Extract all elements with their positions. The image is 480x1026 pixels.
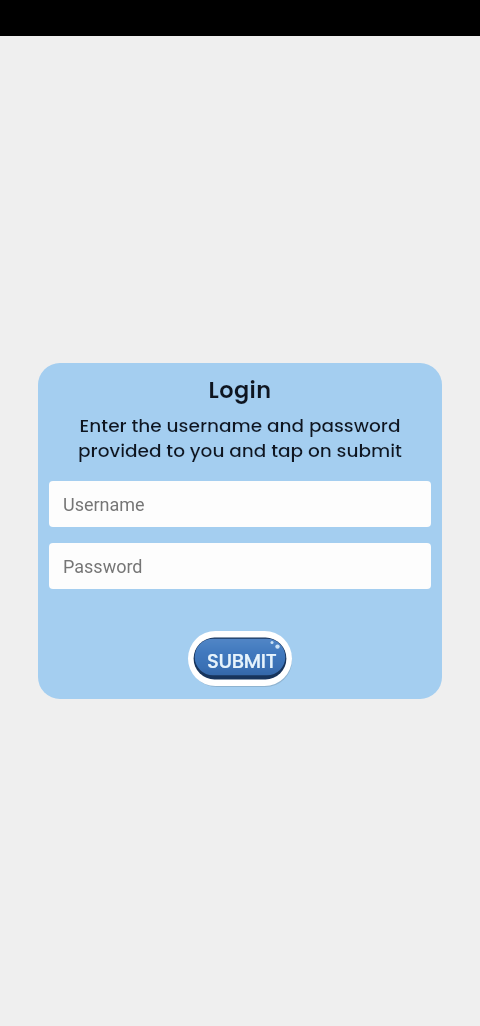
staticText: Enter the username and password provided… <box>38 413 442 463</box>
button[interactable]: Username <box>49 481 431 527</box>
staticText: Login <box>38 374 442 405</box>
button[interactable]: Password <box>49 543 431 589</box>
button[interactable]: SUBMIT <box>188 631 292 686</box>
staticText: SUBMIT <box>207 647 277 674</box>
staticText: Username <box>63 494 145 515</box>
staticText: Password <box>63 556 143 577</box>
